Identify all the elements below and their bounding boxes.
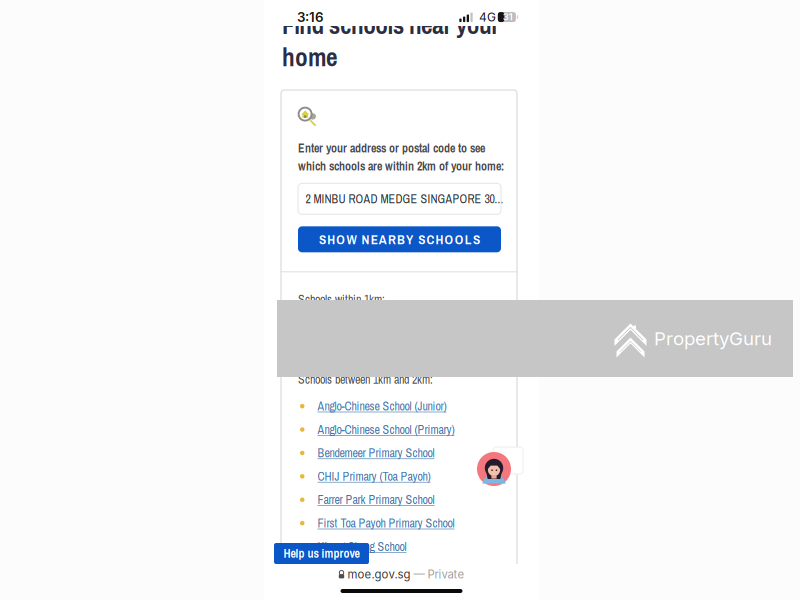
staticText: Kheng Cheng School xyxy=(317,538,406,555)
staticText: First Toa Payoh Primary School xyxy=(317,515,454,531)
staticText: PropertyGuru xyxy=(654,327,772,350)
button[interactable]: Anglo-Chinese School (Primary) xyxy=(300,418,498,441)
staticText: Enter your address or postal code to see xyxy=(298,140,485,156)
staticText: CHIJ Primary (Toa Payoh) xyxy=(317,468,430,484)
button[interactable]: Help us improve xyxy=(274,543,369,564)
staticText: SHOW NEARBY SCHOOLS xyxy=(319,230,480,248)
staticText: 3:16 xyxy=(297,9,324,25)
staticText: moe.gov.sg xyxy=(347,568,410,581)
staticText: Farrer Park Primary School xyxy=(317,492,434,508)
button[interactable]: First Toa Payoh Primary School xyxy=(300,511,498,535)
staticText: 2 MINBU ROAD MEDGE SINGAPORE 30... xyxy=(305,191,503,207)
staticText: 31 xyxy=(503,11,513,22)
staticText: Schools within 1km: xyxy=(298,291,385,307)
staticText: — Private xyxy=(413,568,464,581)
button[interactable]: 2 MINBU ROAD MEDGE SINGAPORE 30... xyxy=(298,183,501,214)
button[interactable]: Saint Andrew's Junior School xyxy=(300,558,498,582)
staticText: Help us improve xyxy=(283,545,359,562)
button[interactable]: Anglo-Chinese School (Junior) xyxy=(300,394,498,418)
button[interactable]: SHOW NEARBY SCHOOLS xyxy=(298,226,501,252)
staticText: which schools are within 2km of your hom… xyxy=(298,158,504,174)
button[interactable]: Bendemeer Primary School xyxy=(300,441,498,465)
staticText: Find schools near your xyxy=(282,8,499,42)
button[interactable]: Kheng Cheng School xyxy=(300,535,498,558)
staticText: Anglo-Chinese School (Primary) xyxy=(317,421,454,438)
staticText: Schools between 1km and 2km: xyxy=(298,371,433,387)
staticText: home xyxy=(282,40,338,74)
staticText: Anglo-Chinese School (Junior) xyxy=(317,398,446,414)
staticText: Saint Andrew's Junior School xyxy=(317,562,442,578)
button[interactable]: Farrer Park Primary School xyxy=(300,488,498,511)
button[interactable]: CHIJ Primary (Toa Payoh) xyxy=(300,465,498,488)
staticText: 4G xyxy=(479,10,496,24)
staticText: Bendemeer Primary School xyxy=(317,445,434,461)
